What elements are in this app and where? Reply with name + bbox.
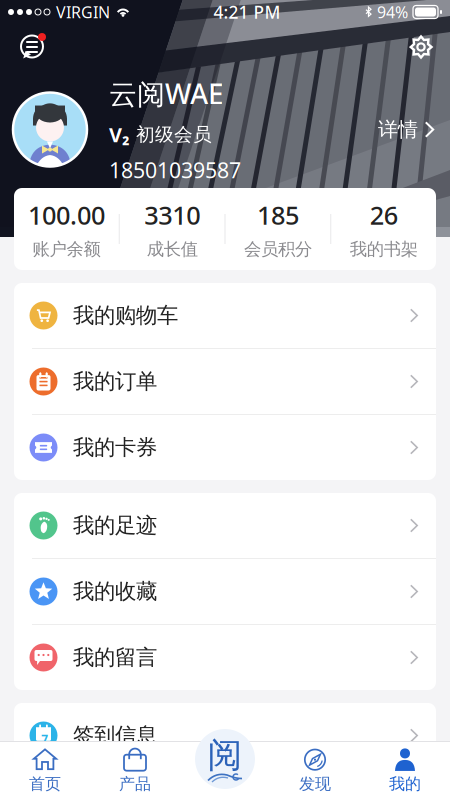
staticText: 7 [41,731,48,747]
staticText: 26 [370,198,398,232]
staticText: 我的卡券 [73,434,157,461]
staticText: 账户余额 [32,239,100,260]
button[interactable]: 26 [331,188,436,270]
staticText: 3310 [144,198,200,232]
staticText: 会员积分 [244,239,312,260]
button[interactable]: 7 [14,703,436,768]
staticText: 消息通知 [73,788,157,800]
staticText: 我的足迹 [73,512,157,539]
button[interactable]: 设置 [409,35,433,59]
staticText: 首页 [29,774,61,794]
staticText: 185 [257,198,299,232]
staticText: 我的留言 [73,644,157,671]
staticText: 成长值 [147,239,198,260]
button[interactable]: 发现 [270,742,360,800]
button[interactable]: 我的足迹 [14,493,436,558]
staticText: 我的 [389,774,421,794]
staticText: 初级会员 [136,123,212,146]
button[interactable]: 我的留言 [14,625,436,690]
staticText: V₂ [109,121,130,148]
button[interactable]: 我的订单 [14,349,436,414]
button[interactable]: 详情 [370,109,434,150]
staticText: 云阅WAE [109,75,224,112]
staticText: 我的书架 [350,239,418,260]
button[interactable]: 消息 [17,32,47,62]
staticText: 94% [377,1,408,23]
staticText: 阅 [207,734,242,777]
button[interactable]: 消息通知 [14,769,436,800]
button[interactable]: 我的收藏 [14,559,436,624]
button[interactable]: 首页 [0,742,90,800]
staticText: 4:21 PM [213,0,280,23]
button[interactable]: 阅读 [195,729,255,789]
staticText: 我的购物车 [73,302,178,329]
staticText: 18501039587 [109,156,241,184]
button[interactable]: 3310 [120,188,225,270]
button[interactable]: 我的卡券 [14,415,436,480]
staticText: 我的订单 [73,368,157,395]
button[interactable]: 我的购物车 [14,283,436,348]
button[interactable]: 产品 [90,742,180,800]
staticText: 产品 [119,774,151,794]
button[interactable]: 100.00 [14,188,119,270]
button[interactable]: 185 [225,188,330,270]
button[interactable]: 我的 [360,742,450,800]
staticText: 我的收藏 [73,578,157,605]
staticText: 签到信息 [73,722,157,749]
staticText: 发现 [299,774,331,794]
staticText: 详情 [378,117,418,142]
staticText: 100.00 [28,198,105,232]
staticText: VIRGIN [56,1,110,23]
